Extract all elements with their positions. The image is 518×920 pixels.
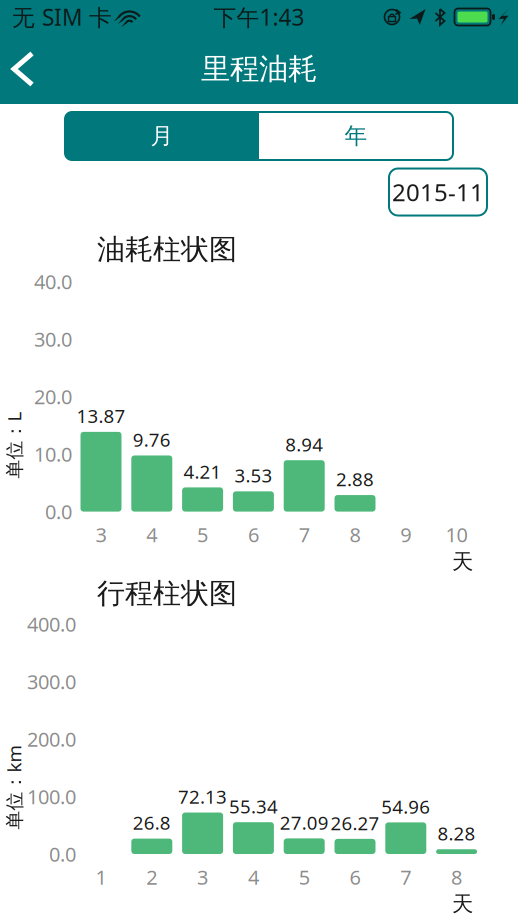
staticText: 20.0 <box>34 383 72 410</box>
staticText: 0.0 <box>45 498 72 525</box>
staticText: 8.94 <box>285 432 323 457</box>
staticText: 72.13 <box>178 784 227 809</box>
staticText: 0.0 <box>49 841 76 867</box>
staticText: 里程油耗 <box>201 51 317 87</box>
staticText: 400.0 <box>27 611 76 637</box>
staticText: 4 <box>248 864 259 890</box>
staticText: 无 SIM 卡 <box>12 2 112 32</box>
staticText: 2 <box>146 864 157 890</box>
button[interactable]: 月 <box>65 112 259 160</box>
staticText: 300.0 <box>27 668 76 695</box>
staticText: 5 <box>299 864 310 890</box>
staticText: 5 <box>197 521 208 548</box>
staticText: 油耗柱状图 <box>97 232 237 267</box>
staticText: 4 <box>146 521 157 548</box>
staticText: 9 <box>400 521 411 548</box>
button[interactable]: 2015-11 <box>389 168 487 215</box>
staticText: 30.0 <box>34 326 72 352</box>
staticText: 4.21 <box>184 459 222 484</box>
staticText: 3 <box>197 864 208 890</box>
staticText: 26.27 <box>330 810 379 835</box>
staticText: 3.53 <box>234 463 272 488</box>
staticText: 8 <box>451 864 462 890</box>
staticText: 行程柱状图 <box>97 576 237 611</box>
staticText: 27.09 <box>280 810 329 835</box>
staticText: 100.0 <box>27 783 76 810</box>
staticText: 单位：L <box>0 433 47 457</box>
staticText: 8.28 <box>438 821 476 846</box>
staticText: 3 <box>95 521 106 548</box>
staticText: 9.76 <box>133 427 171 452</box>
staticText: 2015-11 <box>392 176 484 208</box>
staticText: 10.0 <box>34 441 72 467</box>
button[interactable]: Back <box>0 41 52 96</box>
staticText: 200.0 <box>27 726 76 752</box>
staticText: 6 <box>248 521 259 548</box>
staticText: 7 <box>299 521 310 548</box>
staticText: 26.8 <box>133 810 171 835</box>
staticText: 1 <box>95 864 106 890</box>
staticText: 55.34 <box>229 794 278 819</box>
staticText: 40.0 <box>34 268 72 295</box>
staticText: 6 <box>349 864 360 890</box>
button[interactable]: 年 <box>259 112 453 160</box>
staticText: 8 <box>349 521 360 548</box>
staticText: 下午1:43 <box>213 2 304 32</box>
staticText: 10 <box>446 521 468 548</box>
staticText: 月 <box>150 122 173 150</box>
staticText: 7 <box>400 864 411 890</box>
staticText: 2.88 <box>336 467 374 491</box>
staticText: 54.96 <box>381 794 430 819</box>
staticText: 天 <box>452 548 473 575</box>
staticText: 天 <box>452 891 473 917</box>
staticText: 13.87 <box>76 403 125 428</box>
staticText: 单位：km <box>0 775 56 800</box>
staticText: 年 <box>344 122 367 150</box>
